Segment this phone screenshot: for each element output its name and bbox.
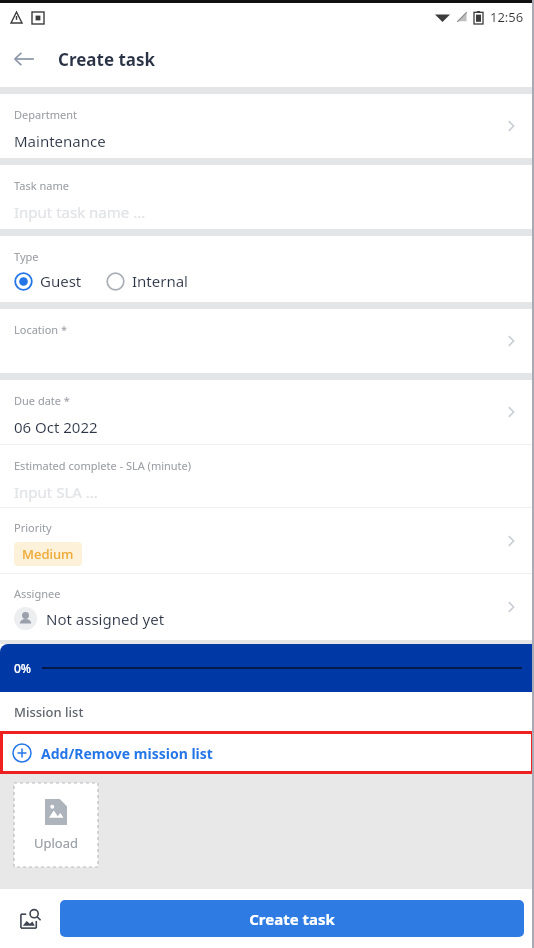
staticText: Input SLA ...: [14, 482, 98, 502]
button[interactable]: Guest: [14, 271, 82, 291]
button[interactable]: Back: [0, 35, 48, 83]
staticText: 12:56: [490, 8, 524, 26]
staticText: Department: [14, 107, 77, 122]
staticText: Create task: [249, 909, 335, 929]
staticText: Input task name ...: [14, 202, 146, 222]
button[interactable]: Upload: [14, 783, 98, 867]
staticText: Estimated complete - SLA (minute): [14, 458, 192, 473]
staticText: Add/Remove mission list: [41, 744, 213, 763]
staticText: Type: [14, 249, 39, 264]
button[interactable]: Task name: [0, 165, 534, 229]
staticText: Upload: [34, 834, 79, 852]
staticText: Internal: [132, 271, 188, 291]
button[interactable]: Search image: [10, 898, 52, 940]
button[interactable]: Department: [0, 94, 534, 158]
button[interactable]: Create task: [60, 900, 524, 937]
staticText: Guest: [40, 271, 82, 291]
staticText: Task name: [14, 178, 69, 193]
staticText: 06 Oct 2022: [14, 417, 98, 437]
staticText: Not assigned yet: [46, 609, 165, 629]
staticText: Assignee: [14, 586, 61, 601]
staticText: Location *: [14, 322, 68, 337]
staticText: Create task: [58, 48, 156, 71]
button[interactable]: Estimated complete - SLA (minute): [0, 445, 534, 507]
button[interactable]: Add/Remove mission list: [0, 731, 534, 774]
staticText: Mission list: [14, 703, 84, 721]
button[interactable]: Internal: [106, 271, 188, 291]
button[interactable]: Priority: [0, 508, 534, 573]
button[interactable]: Assignee: [0, 574, 534, 640]
staticText: Priority: [14, 520, 52, 535]
button[interactable]: Due date *: [0, 380, 534, 444]
staticText: Maintenance: [14, 131, 106, 151]
button[interactable]: Location *: [0, 309, 534, 373]
staticText: 0%: [14, 660, 32, 676]
staticText: Medium: [22, 545, 74, 563]
staticText: Due date *: [14, 393, 70, 408]
